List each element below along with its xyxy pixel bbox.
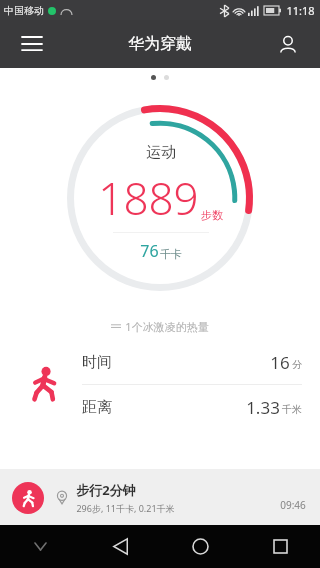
staticText: 76 <box>140 240 159 262</box>
staticText: 千卡 <box>160 247 182 261</box>
staticText: 时间 <box>82 353 112 372</box>
button[interactable]: Menu <box>10 22 54 66</box>
staticText: 距离 <box>82 398 112 417</box>
staticText: 16 <box>270 351 290 374</box>
staticText: 1889 <box>98 168 199 228</box>
staticText: 1.33 <box>246 396 280 419</box>
button[interactable]: 距离 <box>82 385 302 429</box>
staticText: 运动 <box>146 143 176 162</box>
staticText: 1个冰激凌的热量 <box>125 319 209 334</box>
button[interactable]: Recent apps <box>240 525 320 568</box>
staticText: 分 <box>292 358 302 371</box>
staticText: 11:18 <box>286 3 315 18</box>
button[interactable]: Home <box>160 525 240 568</box>
button[interactable]: 步行2分钟 <box>0 469 320 525</box>
staticText: 09:46 <box>280 498 306 512</box>
button[interactable]: Account <box>266 22 310 66</box>
staticText: 千米 <box>282 403 302 416</box>
staticText: 步数 <box>201 208 223 222</box>
button[interactable]: Back <box>80 525 160 568</box>
staticText: 步行2分钟 <box>76 481 136 499</box>
staticText: 296步, 11千卡, 0.21千米 <box>76 502 175 514</box>
staticText: 中国移动 <box>4 4 44 17</box>
button[interactable]: 时间 <box>82 340 302 384</box>
button[interactable]: Hide keyboard <box>0 525 80 568</box>
staticText: 华为穿戴 <box>128 34 192 54</box>
